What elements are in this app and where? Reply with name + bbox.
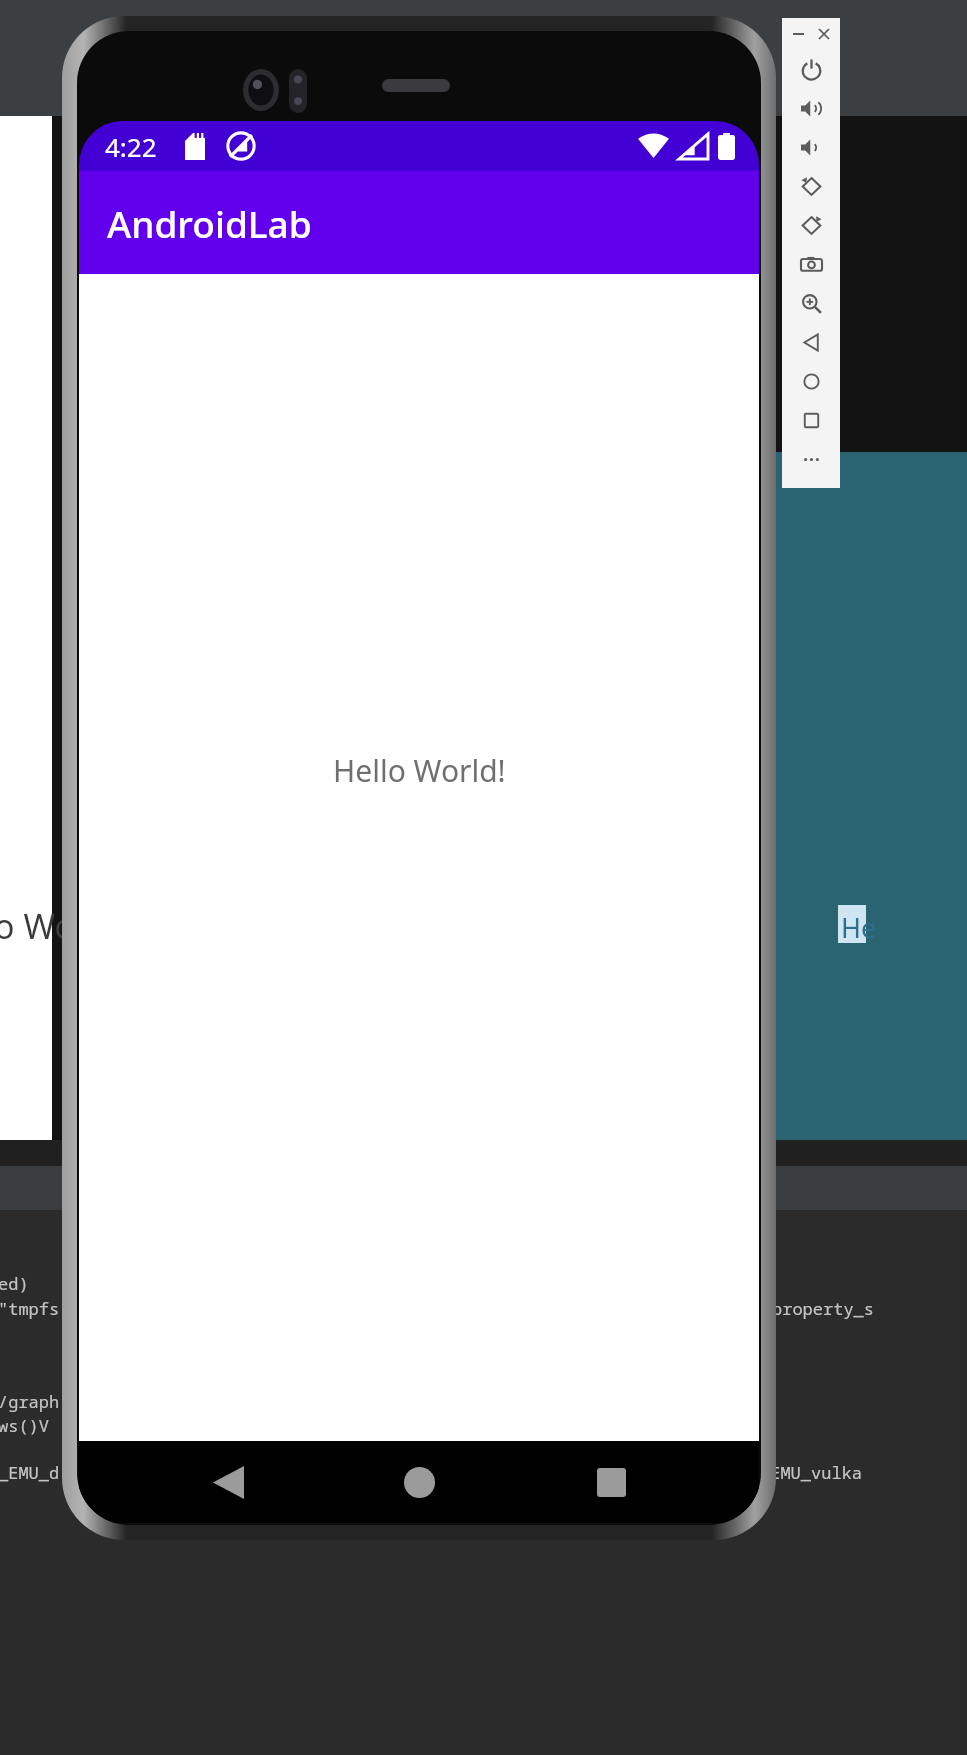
button[interactable]: AndroidLab	[79, 171, 759, 274]
button[interactable]: Zoom	[782, 284, 840, 323]
staticText: ed)	[0, 1272, 29, 1295]
staticText: _EMU_vulka	[760, 1461, 862, 1484]
button[interactable]: Power	[782, 50, 840, 89]
button[interactable]: Rotate right	[782, 206, 840, 245]
button[interactable]: Back	[185, 1441, 271, 1523]
button[interactable]: Rotate left	[782, 167, 840, 206]
button[interactable]: Minimize	[788, 24, 808, 44]
staticText: /graph	[0, 1390, 60, 1413]
button[interactable]: Take screenshot	[782, 245, 840, 284]
button[interactable]: Overview	[782, 401, 840, 440]
button[interactable]: Back	[782, 323, 840, 362]
staticText: AndroidLab	[107, 198, 312, 248]
staticText: ws()V	[0, 1414, 49, 1437]
staticText: o Wo	[0, 903, 75, 949]
staticText: He	[841, 909, 877, 946]
button[interactable]: Home	[782, 362, 840, 401]
staticText: _EMU_d	[0, 1461, 60, 1484]
button[interactable]: Home	[376, 1441, 462, 1523]
staticText: 4:22	[105, 129, 157, 164]
staticText: "tmpfs	[0, 1297, 60, 1320]
button[interactable]: More	[782, 440, 840, 479]
staticText: Hello World!	[333, 750, 506, 791]
button[interactable]: Recent apps	[568, 1441, 654, 1523]
button[interactable]: Volume up	[782, 89, 840, 128]
staticText: property_s	[772, 1297, 874, 1320]
button[interactable]: Close	[814, 24, 834, 44]
button[interactable]: Volume down	[782, 128, 840, 167]
